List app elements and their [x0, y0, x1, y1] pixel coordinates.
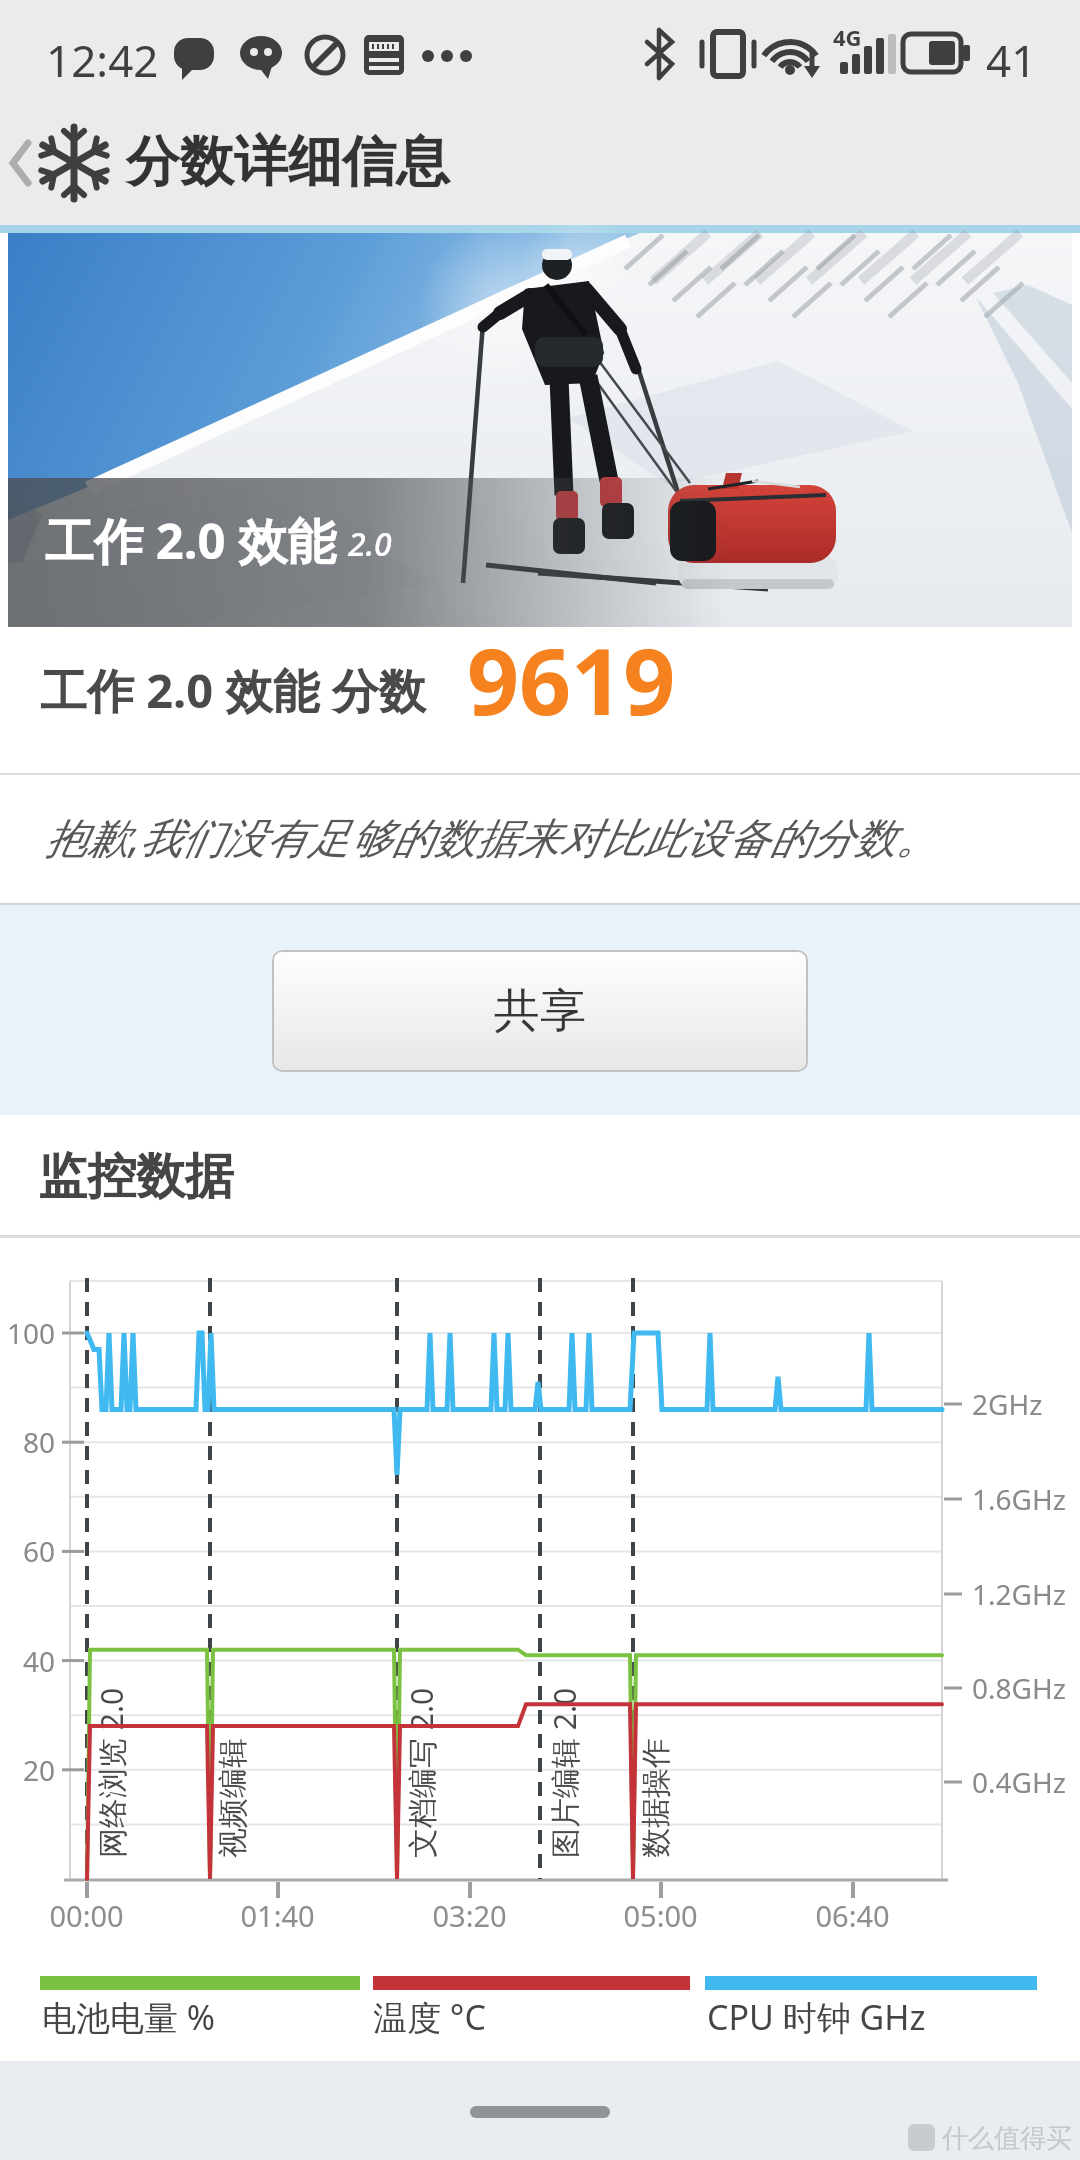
staticText: 12:42	[46, 30, 159, 90]
staticText: CPU 时钟 GHz	[707, 1994, 926, 2040]
button[interactable]: 共享	[272, 950, 808, 1072]
staticText: 电池电量 %	[42, 1994, 216, 2040]
staticText: 共享	[494, 982, 586, 1040]
staticText: 41	[986, 30, 1037, 90]
staticText: 监控数据	[38, 1146, 234, 1208]
staticText: 抱歉,我们没有足够的数据来对比此设备的分数。	[45, 808, 938, 865]
staticText: 工作 2.0 效能 分数	[40, 658, 426, 722]
staticText: 4G	[833, 22, 862, 52]
staticText: 分数详细信息	[126, 128, 450, 196]
staticText: 工作 2.0 效能	[45, 507, 337, 574]
staticText: 9619	[467, 618, 676, 742]
staticText: 温度 °C	[373, 1994, 486, 2040]
staticText: 2.0	[348, 522, 392, 566]
staticText: 什么值得买	[942, 2122, 1072, 2155]
button[interactable]	[0, 115, 44, 225]
